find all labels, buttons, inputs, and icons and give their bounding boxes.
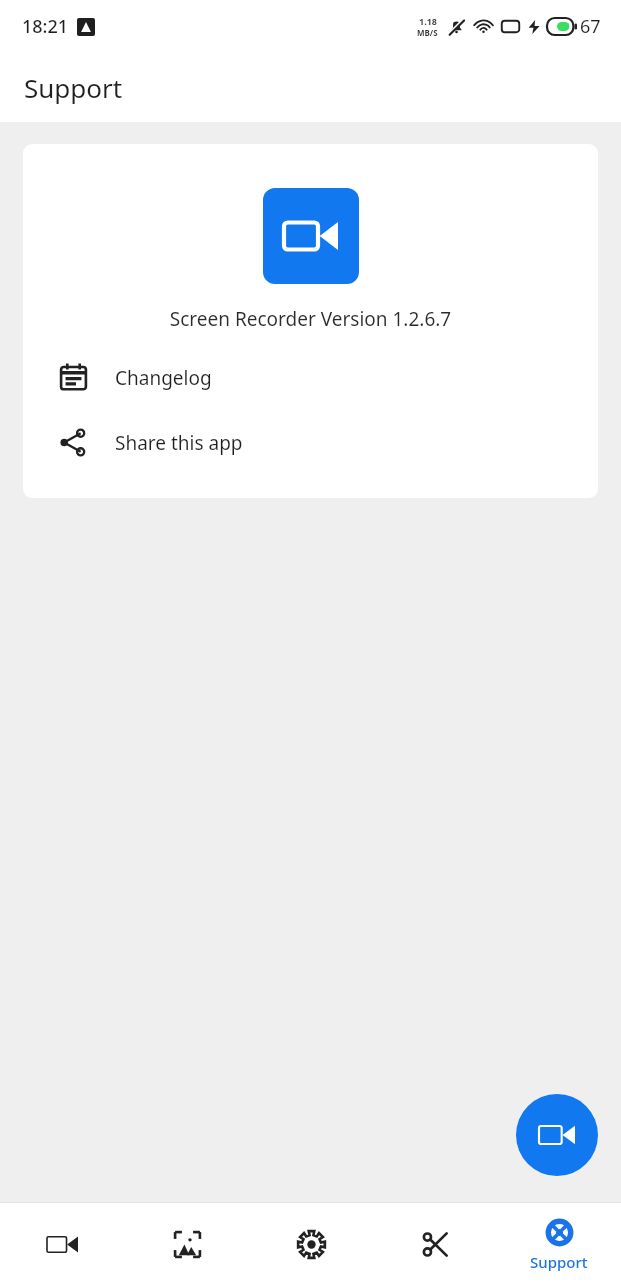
- button[interactable]: Gallery: [125, 1203, 249, 1286]
- staticText: Changelog: [115, 365, 212, 391]
- staticText: 18:21: [22, 14, 69, 39]
- staticText: Share this app: [115, 430, 243, 456]
- staticText: MB/S: [417, 27, 438, 38]
- button[interactable]: Settings: [249, 1203, 373, 1286]
- button[interactable]: Record: [0, 1203, 125, 1286]
- button[interactable]: Record: [516, 1094, 598, 1176]
- staticText: Support: [24, 70, 123, 105]
- staticText: Support: [530, 1252, 588, 1272]
- button[interactable]: Share this app: [23, 423, 598, 462]
- staticText: 1.18: [419, 15, 437, 27]
- button[interactable]: Support: [497, 1203, 621, 1286]
- button[interactable]: Changelog: [23, 358, 598, 397]
- staticText: Screen Recorder Version 1.2.6.7: [23, 306, 598, 332]
- staticText: 67: [580, 14, 601, 39]
- button[interactable]: Trim: [373, 1203, 497, 1286]
